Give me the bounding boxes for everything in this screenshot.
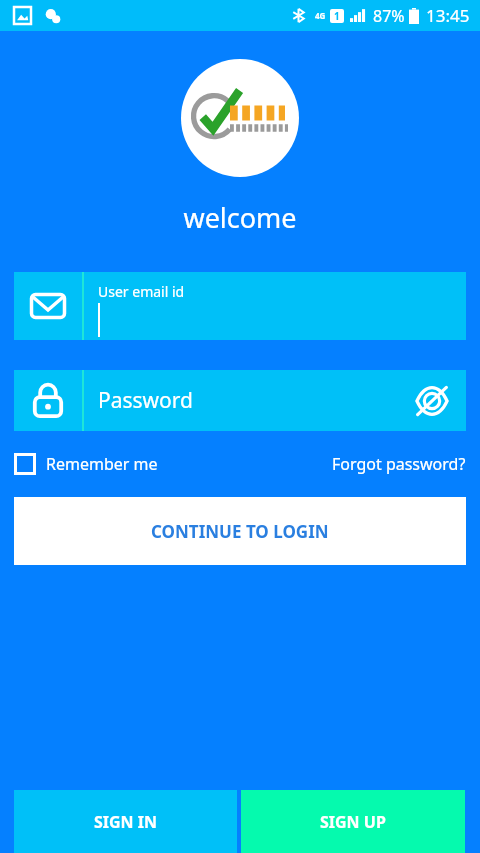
button[interactable]: Forgot password?	[332, 453, 466, 475]
button[interactable]: Remember me	[14, 453, 158, 475]
button[interactable]: CONTINUE TO LOGIN	[14, 497, 466, 565]
staticText: User email id	[98, 282, 185, 301]
button[interactable]: SIGN UP	[241, 790, 465, 853]
staticText: Forgot password?	[332, 453, 466, 475]
staticText: 87%	[373, 5, 405, 27]
staticText: Remember me	[46, 453, 158, 475]
staticText: CONTINUE TO LOGIN	[151, 520, 329, 543]
staticText: SIGN UP	[320, 811, 386, 833]
staticText: 13:45	[426, 4, 470, 27]
staticText: 4G	[315, 10, 326, 21]
button[interactable]: Show password	[412, 381, 452, 421]
button[interactable]: SIGN IN	[14, 790, 237, 853]
other: Password	[14, 370, 82, 431]
other: Email	[14, 272, 82, 340]
button[interactable]: Email	[14, 272, 466, 340]
staticText: 1	[334, 9, 340, 23]
button[interactable]: Password	[14, 370, 466, 431]
staticText: Password	[98, 386, 412, 415]
staticText: welcome	[0, 199, 480, 236]
staticText: SIGN IN	[94, 811, 158, 833]
